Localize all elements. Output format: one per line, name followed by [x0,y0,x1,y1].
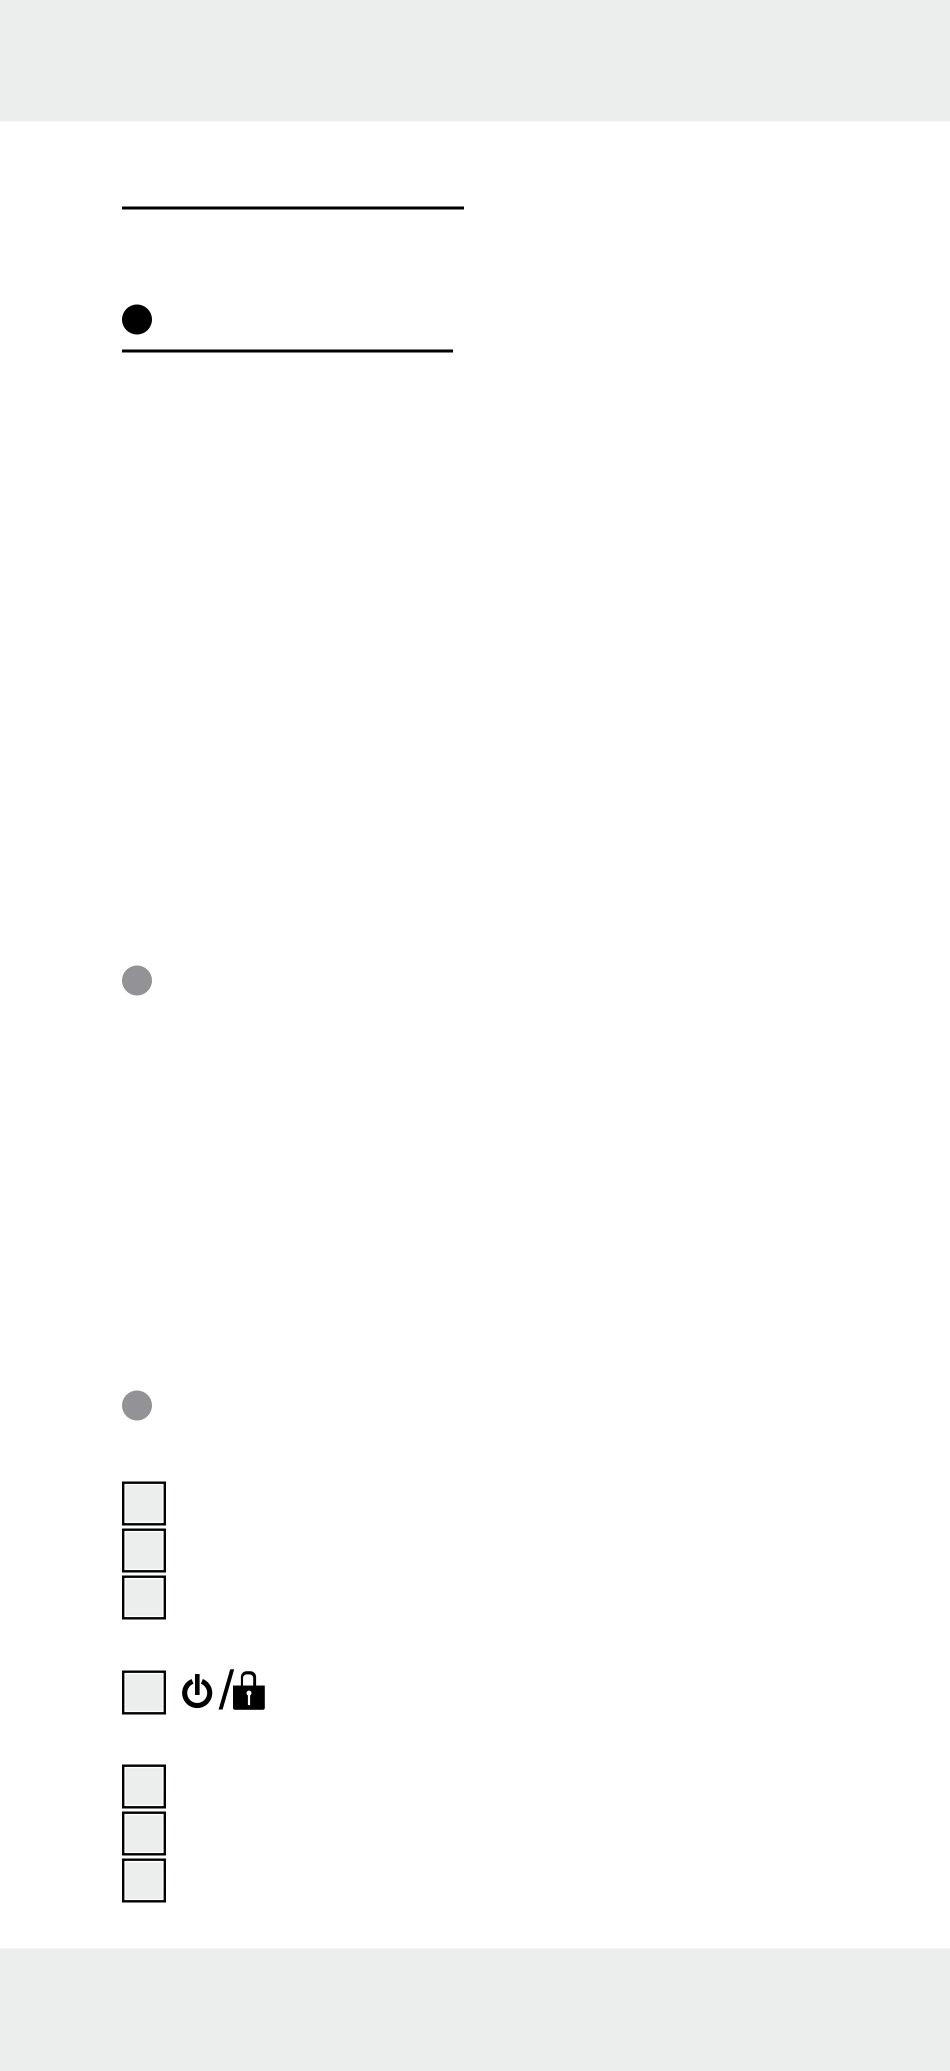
button[interactable]: Bedroom [122,1575,166,1619]
button[interactable]: Kitchen [122,1528,166,1572]
staticText: Smart Home [122,47,307,209]
staticText: All systems normal [122,190,441,352]
button[interactable]: Garage [122,1764,166,1808]
button[interactable]: Power and Lock [122,1670,266,1714]
button[interactable]: Home status, all systems normal [122,304,453,352]
button[interactable]: Living Room [122,1481,166,1525]
button[interactable]: Garden [122,1811,166,1855]
button[interactable]: Office [122,1858,166,1902]
